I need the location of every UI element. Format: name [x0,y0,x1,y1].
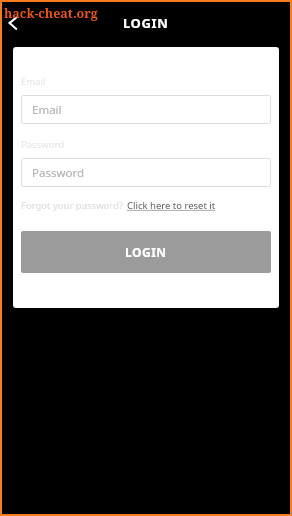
staticText: Email [32,102,62,118]
staticText: Password [32,165,85,181]
button[interactable]: Back [2,12,24,34]
staticText: Forgot your password? [21,199,124,212]
button[interactable]: LOGIN [21,231,271,273]
button[interactable]: Email [21,95,271,124]
staticText: Password [21,138,64,151]
staticText: LOGIN [125,244,167,260]
staticText: LOGIN [123,14,169,32]
staticText: Email [21,75,46,88]
staticText: Click here to reset it [127,199,216,212]
staticText: hack-cheat.org [4,5,98,22]
button[interactable]: Click here to reset it [127,199,216,212]
button[interactable]: Password [21,158,271,187]
